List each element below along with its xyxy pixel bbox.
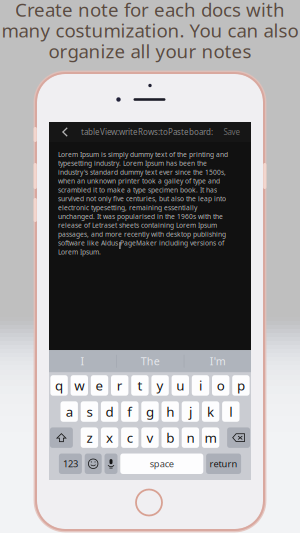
staticText: j: [189, 403, 192, 420]
button[interactable]: u: [172, 375, 189, 396]
staticText: y: [157, 377, 164, 394]
staticText: o: [217, 377, 225, 394]
staticText: t: [137, 377, 142, 394]
staticText: m: [205, 429, 217, 446]
button[interactable]: 123: [59, 453, 82, 474]
button[interactable]: n: [182, 427, 199, 448]
staticText: organize all your notes: [48, 39, 251, 63]
staticText: r: [117, 377, 123, 394]
staticText: n: [186, 429, 194, 446]
button[interactable]: w: [71, 375, 88, 396]
button[interactable]: h: [161, 401, 179, 422]
staticText: a: [66, 403, 73, 420]
staticText: The: [141, 354, 160, 368]
button[interactable]: [85, 453, 102, 474]
button[interactable]: m: [202, 427, 219, 448]
button[interactable]: k: [202, 401, 219, 422]
button[interactable]: return: [206, 453, 241, 474]
staticText: x: [106, 429, 113, 446]
button[interactable]: space: [120, 453, 203, 474]
staticText: k: [207, 403, 214, 420]
staticText: g: [146, 403, 154, 420]
staticText: u: [176, 377, 184, 394]
staticText: z: [86, 429, 92, 446]
staticText: h: [166, 403, 174, 420]
staticText: q: [55, 377, 63, 394]
button[interactable]: j: [182, 401, 199, 422]
staticText: Save: [223, 127, 240, 137]
staticText: i: [199, 377, 202, 394]
button[interactable]: r: [111, 375, 128, 396]
button[interactable]: Back: [56, 122, 74, 142]
button[interactable]: [104, 453, 117, 474]
button[interactable]: I'm: [184, 350, 251, 372]
button[interactable]: g: [141, 401, 159, 422]
staticText: return: [210, 458, 238, 470]
button[interactable]: x: [101, 427, 118, 448]
button[interactable]: f: [121, 401, 138, 422]
button[interactable]: l: [222, 401, 239, 422]
staticText: tableView:writeRows:toPasteboard:: [81, 127, 213, 137]
button[interactable]: z: [81, 427, 98, 448]
staticText: Create note for each docs with: [15, 0, 285, 22]
button[interactable]: Save: [220, 122, 244, 142]
staticText: b: [166, 429, 174, 446]
staticText: I'm: [210, 354, 226, 368]
staticText: s: [86, 403, 92, 420]
staticText: v: [146, 429, 153, 446]
staticText: p: [237, 377, 245, 394]
button[interactable]: s: [81, 401, 98, 422]
staticText: c: [127, 429, 133, 446]
button[interactable]: e: [91, 375, 108, 396]
button[interactable]: i: [192, 375, 209, 396]
staticText: e: [95, 377, 103, 394]
button[interactable]: v: [141, 427, 159, 448]
button[interactable]: b: [161, 427, 179, 448]
staticText: l: [229, 403, 232, 420]
button[interactable]: I: [49, 350, 116, 372]
staticText: I: [80, 354, 84, 368]
button[interactable]: y: [151, 375, 169, 396]
button[interactable]: d: [101, 401, 118, 422]
staticText: f: [127, 403, 132, 420]
staticText: d: [106, 403, 114, 420]
button[interactable]: The: [117, 350, 184, 372]
button[interactable]: p: [232, 375, 250, 396]
button[interactable]: t: [131, 375, 149, 396]
button[interactable]: [227, 427, 250, 448]
staticText: w: [74, 377, 84, 394]
staticText: many costumization. You can also: [1, 18, 298, 43]
button[interactable]: a: [60, 401, 78, 422]
button[interactable]: q: [50, 375, 68, 396]
staticText: 123: [63, 458, 78, 470]
button[interactable]: c: [121, 427, 138, 448]
button[interactable]: o: [212, 375, 229, 396]
staticText: space: [150, 458, 174, 470]
button[interactable]: [50, 427, 73, 448]
staticText: Lorem Ipsum is simply dummy text of the …: [58, 150, 228, 256]
